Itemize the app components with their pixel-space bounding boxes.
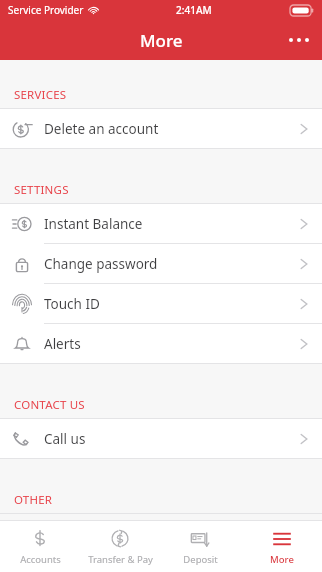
staticText: OTHER [14,492,53,508]
button[interactable]: Transfer & Pay [80,521,160,572]
button[interactable]: Touch ID [0,284,322,323]
staticText: More [270,553,294,566]
staticText: Transfer & Pay [88,553,153,566]
staticText: CONTACT US [14,397,85,413]
staticText: 2:41AM [176,3,212,17]
button[interactable]: Change password [0,244,322,283]
staticText: Service Provider [8,3,84,17]
staticText: Accounts [20,553,61,566]
button[interactable]: Accounts [0,521,80,572]
staticText: SETTINGS [14,182,69,198]
button[interactable]: Alerts [0,324,322,363]
button[interactable]: Call us [0,419,322,458]
button[interactable]: Instant Balance [0,204,322,243]
staticText: Delete an account [44,120,159,138]
button[interactable]: More options [276,20,322,60]
staticText: Deposit [183,553,218,566]
staticText: Instant Balance [44,215,143,233]
button[interactable]: Deposit [160,521,241,572]
button[interactable]: Delete an account [0,109,322,148]
staticText: More [140,29,183,52]
staticText: Alerts [44,335,81,353]
button[interactable]: More [241,521,322,572]
staticText: Call us [44,430,86,448]
staticText: Change password [44,255,158,273]
staticText: SERVICES [14,87,67,103]
staticText: Touch ID [44,295,100,313]
